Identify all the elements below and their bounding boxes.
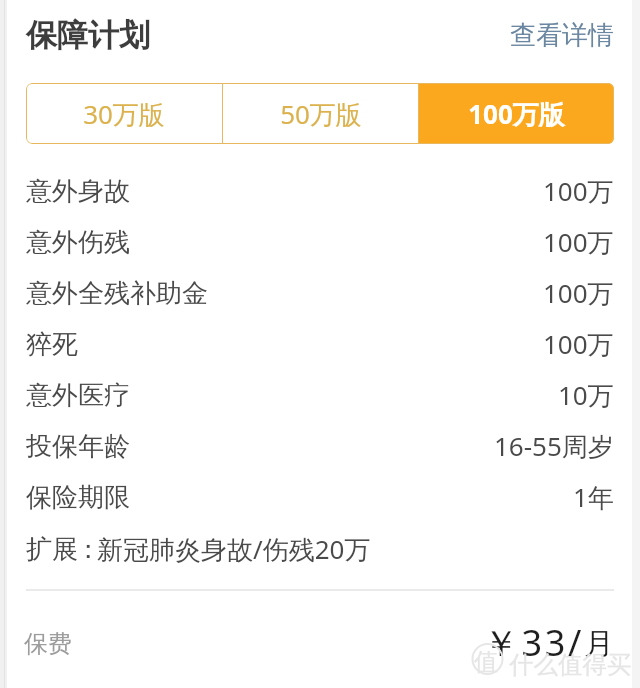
staticText: 投保年龄 [26,430,130,463]
staticText: 值 [474,647,498,677]
staticText: 新冠肺炎身故/伤残20万 [97,531,371,567]
staticText: 10万 [558,377,614,413]
staticText: 50万版 [280,96,362,132]
button[interactable]: 投保年龄 [0,421,640,471]
staticText: 100万版 [468,96,565,132]
button[interactable]: 意外医疗 [0,370,640,420]
button[interactable]: 查看详情 [490,0,640,70]
staticText: 100万 [543,326,614,362]
staticText: 16-55周岁 [494,428,614,464]
staticText: 保费 [24,629,72,659]
staticText: 意外医疗 [26,379,130,412]
staticText: 100万 [543,224,614,260]
staticText: 1年 [573,479,614,515]
staticText: 月 [584,625,614,663]
staticText: 意外全残补助金 [26,277,208,310]
staticText: 扩展 [26,533,78,566]
button[interactable]: 猝死 [0,319,640,369]
staticText: 100万 [543,275,614,311]
staticText: 保险期限 [26,481,130,514]
button[interactable]: 意外全残补助金 [0,268,640,318]
staticText: 意外伤残 [26,226,130,259]
staticText: ￥33/ [483,618,584,667]
staticText: 30万版 [83,96,165,132]
button[interactable]: 30万版 [26,83,222,144]
staticText: 什么值得买 [509,649,632,680]
staticText: 保障计划 [26,16,150,55]
button[interactable]: 50万版 [223,83,418,144]
button[interactable]: 保险期限 [0,472,640,522]
staticText: 意外身故 [26,175,130,208]
button[interactable]: 意外伤残 [0,217,640,267]
button[interactable]: 扩展 [0,524,640,574]
button[interactable]: 100万版 [419,83,614,144]
button[interactable]: 意外身故 [0,166,640,216]
staticText: 100万 [543,173,614,209]
staticText: 查看详情 [510,19,614,52]
staticText: 猝死 [26,328,78,361]
staticText: ： [75,533,101,566]
